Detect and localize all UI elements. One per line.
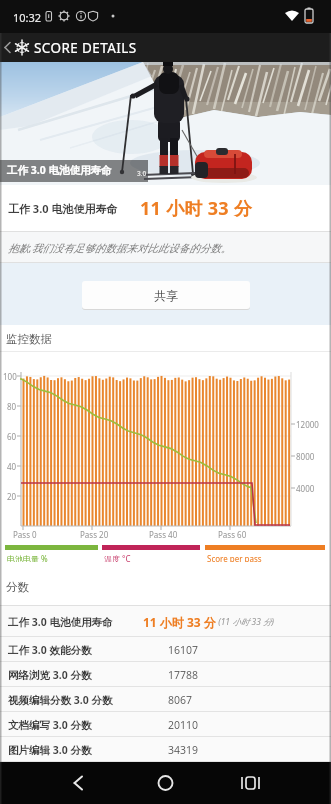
button[interactable]: 视频编辑分数 3.0 分数 xyxy=(0,687,331,712)
button[interactable]: 工作 3.0 电池使用寿命 xyxy=(0,606,331,637)
staticText: 17788 xyxy=(168,668,199,682)
staticText: 3.0 xyxy=(137,169,147,178)
staticText: 共享 xyxy=(154,288,178,303)
staticText: 60 xyxy=(7,431,17,442)
button[interactable] xyxy=(111,762,221,804)
staticText: 11 小时 33 分 xyxy=(140,196,253,221)
staticText: SCORE DETAILS xyxy=(34,39,137,57)
staticText: Score per pass xyxy=(207,553,262,564)
staticText: 工作 3.0 电池使用寿命 xyxy=(8,615,113,629)
staticText: Pass 0 xyxy=(13,529,37,540)
staticText: 图片编辑 3.0 分数 xyxy=(8,743,92,757)
staticText: 11 小时 33 分 xyxy=(143,614,216,630)
button[interactable]: 图片编辑 3.0 分数 xyxy=(0,737,331,762)
staticText: Pass 40 xyxy=(149,529,178,540)
button[interactable] xyxy=(0,762,111,804)
button[interactable]: 共享 xyxy=(82,281,250,309)
staticText: (11 小时 33 分) xyxy=(216,616,275,628)
staticText: 工作 3.0 电池使用寿命 xyxy=(8,201,118,216)
staticText: 20110 xyxy=(168,718,199,732)
staticText: 16107 xyxy=(168,643,199,657)
staticText: 文档编写 3.0 分数 xyxy=(8,718,92,732)
button[interactable]: SCORE DETAILS xyxy=(0,33,331,62)
staticText: 12000 xyxy=(296,419,319,430)
staticText: 40 xyxy=(7,461,17,472)
staticText: 10:32 xyxy=(13,10,42,25)
staticText: 电池电量 % xyxy=(7,553,48,564)
staticText: 8000 xyxy=(296,451,315,462)
staticText: 温度 °C xyxy=(104,553,131,564)
staticText: 监控数据 xyxy=(6,332,52,346)
staticText: 抱歉,我们没有足够的数据来对比此设备的分数。 xyxy=(8,241,232,255)
staticText: 100 xyxy=(3,371,17,382)
button[interactable]: 网络浏览 3.0 分数 xyxy=(0,662,331,687)
staticText: 34319 xyxy=(168,743,199,757)
staticText: Pass 60 xyxy=(218,529,247,540)
staticText: 分数 xyxy=(6,580,29,594)
staticText: Pass 20 xyxy=(80,529,109,540)
staticText: 视频编辑分数 3.0 分数 xyxy=(8,693,113,707)
staticText: 网络浏览 3.0 分数 xyxy=(8,668,92,682)
staticText: 8067 xyxy=(168,693,193,707)
button[interactable] xyxy=(221,762,331,804)
staticText: 工作 3.0 效能分数 xyxy=(8,643,92,657)
staticText: 20 xyxy=(7,491,17,502)
button[interactable]: 文档编写 3.0 分数 xyxy=(0,712,331,737)
staticText: 工作 3.0 电池使用寿命 xyxy=(7,163,112,177)
staticText: 4000 xyxy=(296,483,315,494)
button[interactable]: 工作 3.0 效能分数 xyxy=(0,637,331,662)
staticText: 80 xyxy=(7,401,17,412)
